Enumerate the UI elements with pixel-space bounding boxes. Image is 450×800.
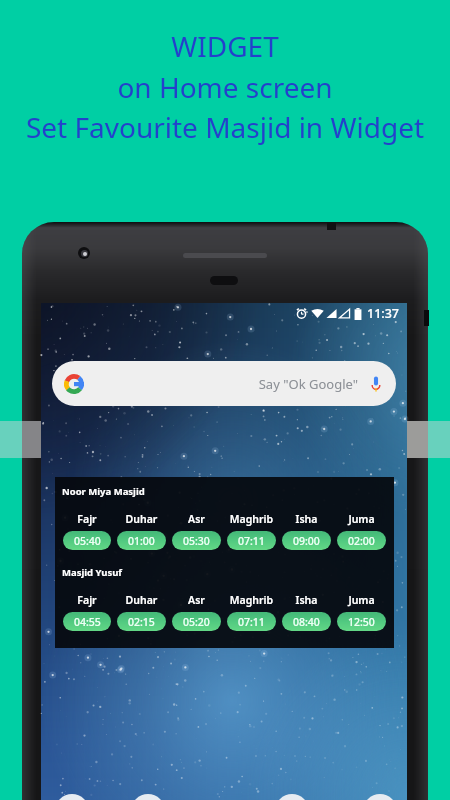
button[interactable]: App icon <box>55 794 89 800</box>
staticText: 12:50 <box>348 615 375 629</box>
other: Google <box>64 374 84 394</box>
staticText: Duhar <box>114 512 169 526</box>
staticText: Say "Ok Google" <box>84 375 358 393</box>
staticText: 04:55 <box>74 615 101 629</box>
staticText: Fajr <box>60 512 114 526</box>
staticText: Isha <box>279 593 334 607</box>
staticText: Maghrib <box>224 512 279 526</box>
staticText: Juma <box>334 593 389 607</box>
staticText: Duhar <box>114 593 169 607</box>
staticText: Noor Miya Masjid <box>62 485 145 498</box>
staticText: Isha <box>279 512 334 526</box>
staticText: Fajr <box>60 593 114 607</box>
staticText: 02:00 <box>348 534 375 548</box>
staticText: 05:40 <box>74 534 101 548</box>
staticText: Maghrib <box>224 593 279 607</box>
button[interactable]: Google <box>52 361 396 406</box>
staticText: WIDGET on Home screen Set Favourite Masj… <box>0 27 450 146</box>
button[interactable]: App icon <box>363 794 397 800</box>
button[interactable]: App icon <box>275 794 309 800</box>
staticText: 09:00 <box>293 534 320 548</box>
staticText: Asr <box>169 593 224 607</box>
staticText: 08:40 <box>293 615 320 629</box>
staticText: Juma <box>334 512 389 526</box>
staticText: 11:37 <box>367 305 400 322</box>
staticText: 01:00 <box>128 534 155 548</box>
staticText: 07:11 <box>238 534 265 548</box>
button[interactable]: Noor Miya Masjid <box>55 477 394 648</box>
staticText: Asr <box>169 512 224 526</box>
staticText: 05:30 <box>183 534 210 548</box>
staticText: 05:20 <box>183 615 210 629</box>
staticText: Masjid Yusuf <box>62 566 123 579</box>
staticText: 07:11 <box>238 615 265 629</box>
button[interactable]: App icon <box>131 794 165 800</box>
staticText: 02:15 <box>128 615 155 629</box>
other: Voice search <box>370 375 382 393</box>
